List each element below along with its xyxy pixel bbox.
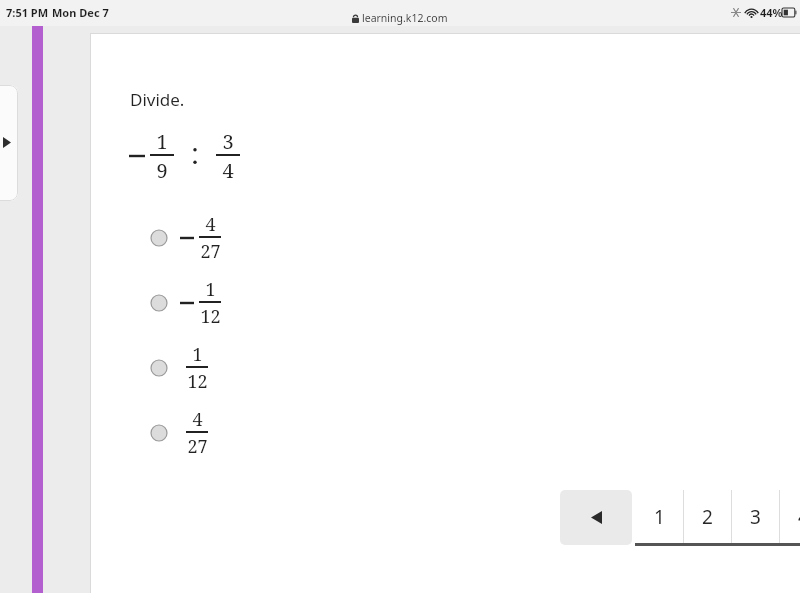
staticText: 2 bbox=[702, 504, 713, 530]
staticText: 3 bbox=[750, 504, 761, 530]
staticText: 4 bbox=[205, 212, 216, 237]
button[interactable]: 4 bbox=[779, 488, 800, 545]
button[interactable]: Open side panel bbox=[0, 85, 18, 201]
button[interactable]: 4 bbox=[150, 407, 208, 459]
staticText: 4 bbox=[222, 157, 234, 184]
button[interactable]: 1 bbox=[150, 342, 208, 394]
staticText: 27 bbox=[187, 434, 208, 459]
button[interactable]: 2 bbox=[683, 488, 731, 545]
staticText: 1 bbox=[205, 277, 216, 302]
staticText: 27 bbox=[200, 239, 221, 264]
staticText: Divide. bbox=[130, 88, 185, 111]
staticText: 12 bbox=[200, 304, 221, 329]
staticText: 1 bbox=[654, 504, 665, 530]
staticText: 4 bbox=[798, 504, 800, 530]
staticText: Mon Dec 7 bbox=[52, 5, 109, 20]
staticText: 3 bbox=[222, 128, 234, 155]
button[interactable]: 1 bbox=[635, 488, 683, 545]
staticText: 44% bbox=[760, 5, 783, 20]
button[interactable]: 1 bbox=[150, 277, 221, 329]
staticText: learning.k12.com bbox=[362, 11, 448, 25]
staticText: 4 bbox=[192, 407, 203, 432]
button[interactable]: 3 bbox=[731, 488, 779, 545]
button[interactable]: 4 bbox=[150, 212, 221, 264]
staticText: 1 bbox=[156, 128, 168, 155]
staticText: 9 bbox=[156, 157, 168, 184]
button[interactable]: Backspace bbox=[560, 490, 632, 545]
staticText: 1 bbox=[192, 342, 203, 367]
staticText: 7:51 PM bbox=[6, 5, 49, 20]
staticText: 12 bbox=[187, 369, 208, 394]
